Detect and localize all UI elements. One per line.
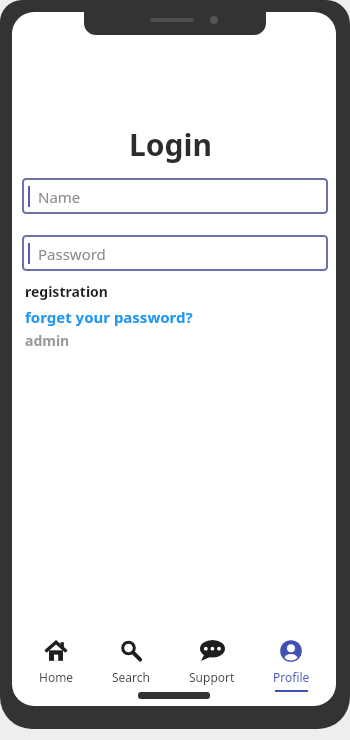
- button[interactable]: registration: [25, 282, 108, 301]
- button[interactable]: Home: [16, 639, 96, 685]
- button[interactable]: Name: [22, 178, 328, 214]
- button[interactable]: Profile: [251, 639, 331, 685]
- button[interactable]: admin: [25, 331, 70, 350]
- staticText: Login: [129, 124, 212, 165]
- button[interactable]: forget your password?: [25, 307, 193, 327]
- staticText: Name: [38, 187, 81, 207]
- staticText: Profile: [273, 669, 310, 685]
- staticText: Password: [38, 244, 106, 264]
- staticText: Search: [112, 669, 150, 685]
- button[interactable]: Password: [22, 235, 328, 271]
- button[interactable]: Support: [172, 639, 252, 685]
- staticText: Support: [189, 669, 235, 685]
- staticText: Home: [39, 669, 74, 685]
- button[interactable]: Search: [91, 639, 171, 685]
